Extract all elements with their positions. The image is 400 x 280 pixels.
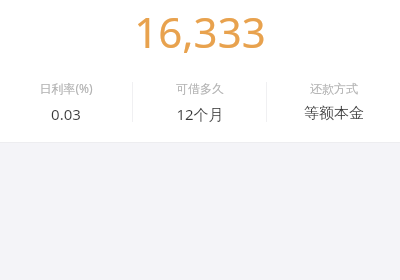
staticText: 12个月 (176, 104, 224, 124)
button[interactable]: 日利率(%) (0, 78, 132, 126)
staticText: 日利率(%) (39, 80, 93, 96)
button[interactable]: 还款方式 (267, 79, 400, 125)
button[interactable]: 可借多久 (133, 79, 266, 126)
button[interactable]: 16,333 (0, 0, 400, 62)
staticText: 可借多久 (176, 81, 224, 96)
staticText: 还款方式 (310, 81, 358, 96)
staticText: 等额本金 (304, 104, 364, 123)
staticText: 16,333 (134, 3, 266, 60)
staticText: 0.03 (51, 104, 81, 124)
